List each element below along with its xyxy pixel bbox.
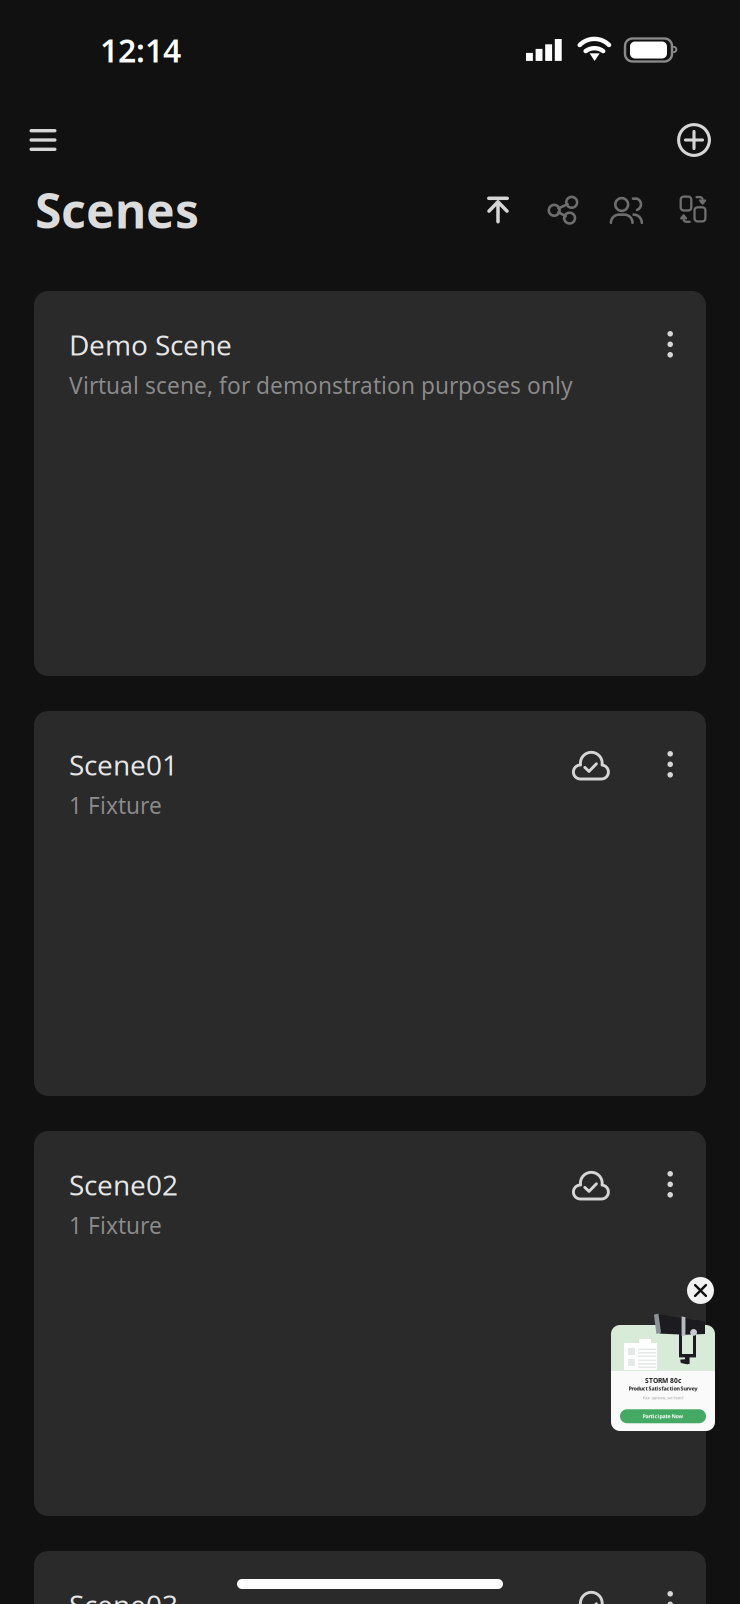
staticText: 12:14 [100, 29, 181, 71]
staticText: Your opinions, we listen! [642, 1395, 683, 1400]
button[interactable]: Scene03 [34, 1551, 706, 1604]
button[interactable]: Close ad [687, 1277, 714, 1304]
staticText: Participate Now [642, 1413, 683, 1420]
button[interactable]: Upload [470, 180, 526, 240]
staticText: Product Satisfaction Survey [628, 1385, 697, 1392]
staticText: Scene01 [69, 746, 178, 783]
button[interactable]: Scene01 [34, 711, 706, 1096]
button[interactable]: Transfer devices [665, 180, 721, 240]
staticText: Virtual scene, for demonstration purpose… [69, 370, 573, 400]
button[interactable]: Scene02 [34, 1131, 706, 1516]
button[interactable]: Add scene [665, 100, 723, 180]
button[interactable]: Menu [14, 100, 72, 180]
staticText: Demo Scene [69, 326, 232, 363]
button[interactable]: Members [598, 180, 654, 240]
button[interactable]: Share [533, 180, 589, 240]
button[interactable]: Demo Scene [34, 291, 706, 676]
staticText: Scenes [35, 178, 199, 242]
staticText: Scene02 [69, 1166, 178, 1203]
staticText: 1 Fixture [69, 790, 162, 820]
staticText: STORM 80c [645, 1376, 681, 1385]
staticText: Scene03 [69, 1586, 178, 1604]
staticText: 1 Fixture [69, 1210, 162, 1240]
button[interactable]: Participate Now [620, 1409, 706, 1423]
